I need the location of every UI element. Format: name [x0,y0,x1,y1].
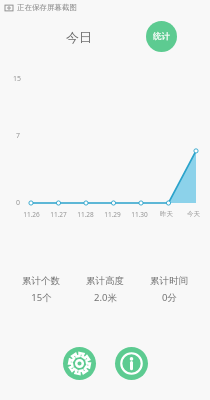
staticText: 今日 [66,29,92,45]
staticText: 0 [16,198,21,208]
staticText: 统计 [153,31,170,42]
staticText: 今天 [187,210,200,218]
button[interactable]: 统计 [146,21,177,52]
staticText: 昨天 [160,210,173,218]
staticText: 11.27 [50,210,67,219]
staticText: 2.0米 [94,291,117,304]
staticText: 15 [13,74,22,84]
staticText: 累计个数 [22,275,60,287]
staticText: 15个 [31,291,52,304]
staticText: 7 [16,131,21,141]
staticText: 11.28 [77,210,94,219]
staticText: 11.26 [23,210,40,219]
staticText: 正在保存屏幕截图 [17,3,77,12]
staticText: 0分 [162,291,177,304]
staticText: 11.29 [104,210,121,219]
button[interactable]: Info [111,343,151,383]
staticText: 累计高度 [86,275,124,287]
staticText: 累计时间 [150,275,188,287]
staticText: 11.30 [131,210,148,219]
button[interactable]: Settings [59,343,99,383]
